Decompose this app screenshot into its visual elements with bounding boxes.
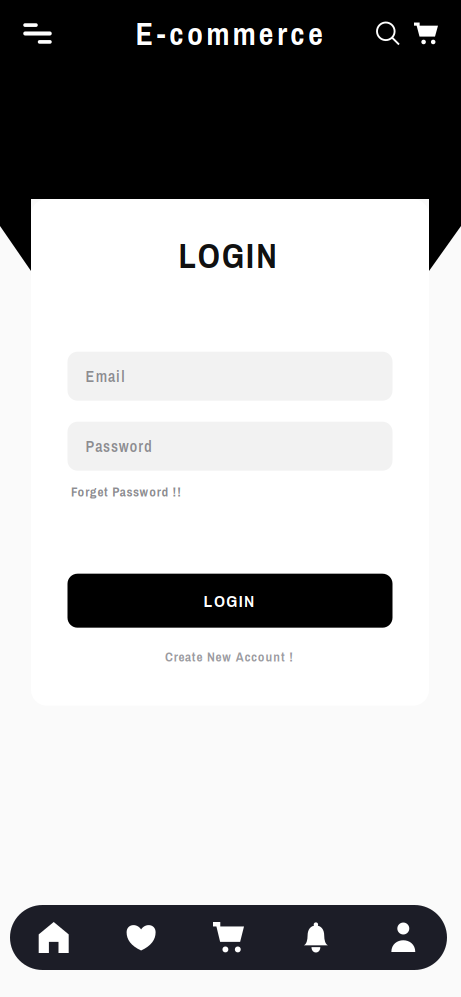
staticText: Password [85,435,154,457]
button[interactable]: LOGIN [67,574,392,628]
button[interactable]: Search [369,5,407,61]
button[interactable]: Create New Account ! [67,647,392,667]
button[interactable]: Menu [11,5,63,61]
staticText: LOGIN [178,232,281,279]
button[interactable]: Forget Password !! [31,482,429,502]
button[interactable]: Home [10,905,97,970]
button[interactable]: Shopping cart [407,5,445,61]
staticText: Create New Account ! [165,648,295,666]
button[interactable]: Cart [185,905,272,970]
button[interactable]: Favorites [97,905,185,970]
button[interactable]: Profile [360,905,447,970]
button[interactable]: Notifications [272,905,360,970]
staticText: Forget Password !! [71,483,183,501]
staticText: Email [85,365,126,387]
staticText: LOGIN [203,589,256,612]
staticText: E‑commerce [135,12,328,55]
